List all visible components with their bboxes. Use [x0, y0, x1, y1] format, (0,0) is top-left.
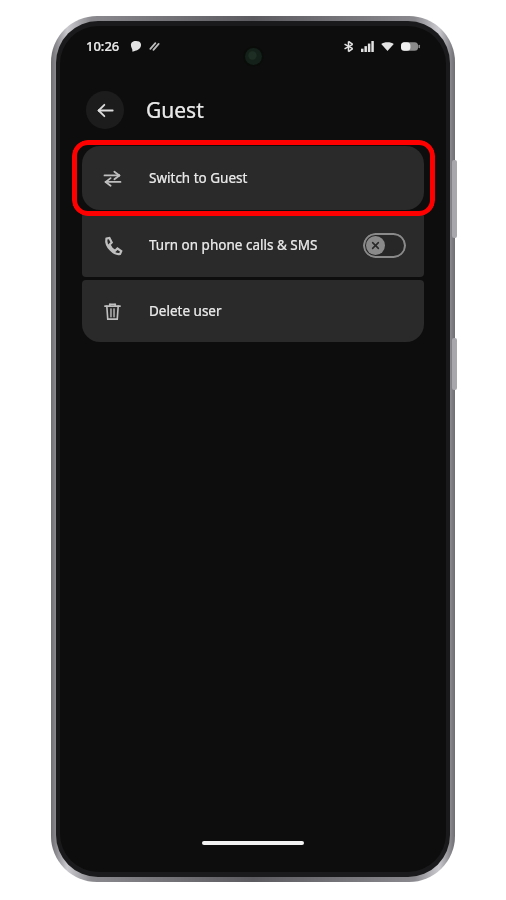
staticText: Switch to Guest: [149, 169, 248, 187]
staticText: Guest: [146, 96, 204, 125]
button[interactable]: Back: [86, 91, 124, 129]
staticText: Delete user: [149, 302, 222, 320]
button[interactable]: Turn on phone calls and SMS: [363, 233, 406, 258]
button[interactable]: Switch to Guest: [82, 146, 424, 210]
button[interactable]: Turn on phone calls & SMS: [82, 213, 424, 277]
staticText: 10:26: [86, 37, 120, 55]
button[interactable]: Delete user: [82, 280, 424, 342]
staticText: Turn on phone calls & SMS: [149, 236, 318, 254]
